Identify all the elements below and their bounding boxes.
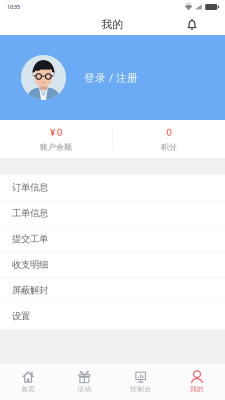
button[interactable]: 我的 (169, 364, 225, 400)
button[interactable]: 收支明细 (0, 252, 225, 278)
staticText: 账户余额 (40, 142, 72, 152)
staticText: 屏蔽解封 (12, 284, 48, 296)
staticText: 设置 (12, 310, 30, 322)
button[interactable]: 0 (113, 120, 225, 158)
button[interactable]: ¥ 0 (0, 120, 112, 158)
staticText: ¥ 0 (50, 126, 62, 138)
button[interactable]: 通知 (180, 14, 204, 35)
staticText: 提交工单 (12, 233, 48, 245)
staticText: 10:35 (7, 3, 20, 11)
button[interactable]: 活动 (56, 364, 112, 400)
staticText: 首页 (21, 385, 35, 393)
staticText: 工单信息 (12, 207, 48, 219)
button[interactable]: 控制台 (112, 364, 169, 400)
staticText: 登录 / 注册 (84, 70, 138, 85)
button[interactable]: 首页 (0, 364, 56, 400)
staticText: 我的 (101, 18, 123, 31)
staticText: 积分 (161, 142, 177, 152)
button[interactable]: 提交工单 (0, 226, 225, 252)
staticText: 收支明细 (12, 259, 48, 270)
staticText: 0 (166, 126, 171, 138)
button[interactable]: 登录 / 注册 (79, 66, 143, 89)
button[interactable]: 工单信息 (0, 201, 225, 226)
staticText: 控制台 (130, 385, 151, 393)
button[interactable]: 设置 (0, 303, 225, 329)
button[interactable]: 屏蔽解封 (0, 278, 225, 303)
staticText: 订单信息 (12, 182, 48, 193)
staticText: 我的 (190, 385, 204, 393)
staticText: 活动 (77, 385, 91, 393)
button[interactable]: 订单信息 (0, 175, 225, 201)
